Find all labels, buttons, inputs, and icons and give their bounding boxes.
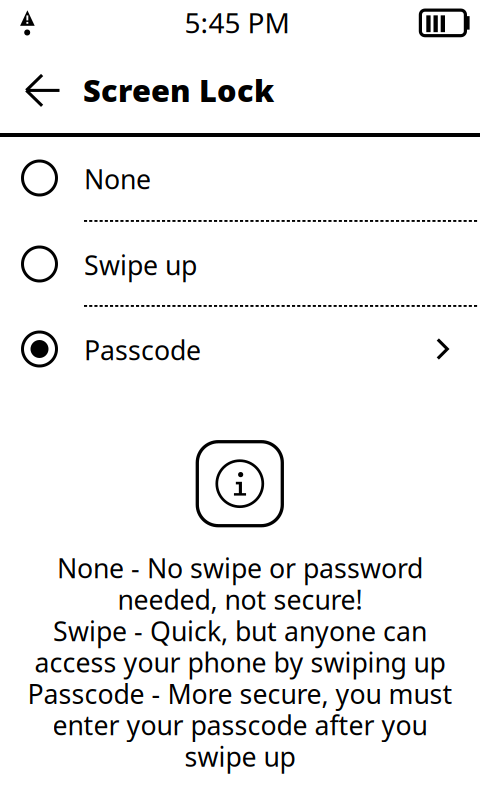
staticText: 5:45 PM [184,4,289,41]
staticText: None [84,161,151,197]
staticText: Passcode [84,332,201,368]
staticText: Passcode - More secure, you must [27,676,452,711]
staticText: enter your passcode after you [52,707,427,743]
button[interactable]: Back [11,60,73,120]
staticText: Screen Lock [83,70,274,110]
button[interactable]: Swipe up [0,221,480,306]
button[interactable]: None [0,135,480,220]
staticText: access your phone by swiping up [34,644,445,680]
button[interactable]: Information [197,442,282,526]
staticText: swipe up [184,739,295,774]
staticText: needed, not secure! [117,582,362,617]
staticText: Swipe - Quick, but anyone can [53,613,427,648]
staticText: None - No swipe or password [57,550,423,586]
staticText: Swipe up [84,247,197,283]
button[interactable]: Passcode [0,306,480,391]
